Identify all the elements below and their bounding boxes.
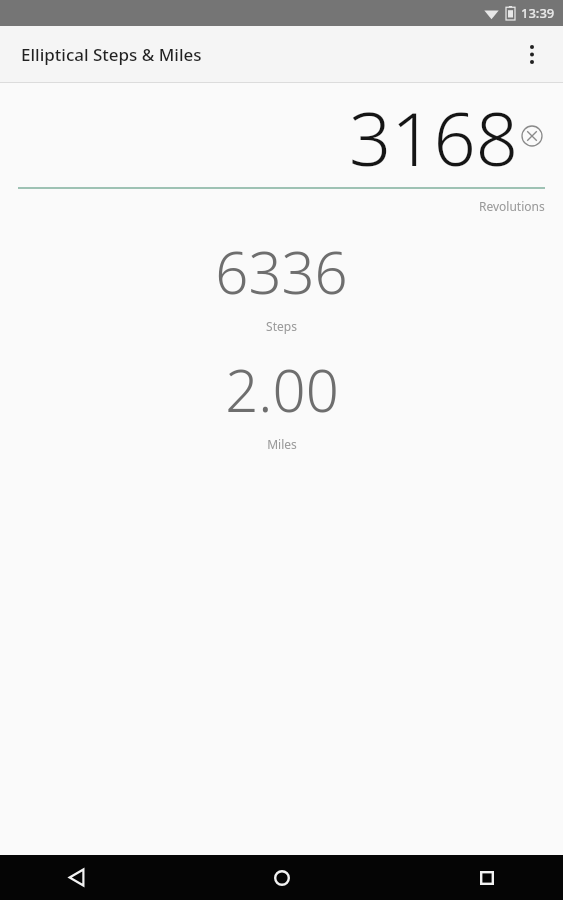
button[interactable]: Back: [52, 855, 100, 900]
button[interactable]: Recent apps: [463, 855, 511, 900]
button[interactable]: Home: [258, 855, 306, 900]
staticText: Elliptical Steps & Miles: [21, 43, 202, 66]
staticText: Revolutions: [479, 198, 545, 214]
staticText: Steps: [266, 318, 297, 334]
staticText: 6336: [215, 232, 348, 311]
staticText: 3168: [349, 87, 519, 188]
staticText: Miles: [267, 436, 297, 452]
staticText: 2.00: [225, 350, 339, 429]
button[interactable]: Clear: [519, 123, 545, 149]
staticText: 13:39: [521, 4, 555, 22]
button[interactable]: More options: [510, 32, 554, 76]
button[interactable]: 3168: [18, 83, 545, 187]
